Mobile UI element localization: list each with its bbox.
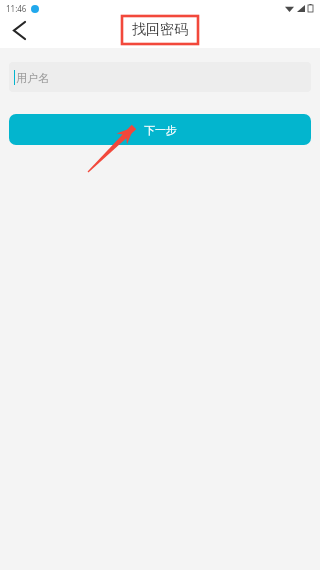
staticText: 下一步	[144, 123, 177, 137]
button[interactable]: Back	[0, 11, 38, 49]
button[interactable]: 下一步	[9, 114, 311, 145]
staticText: 11:46	[6, 3, 27, 14]
staticText: 用户名	[16, 71, 49, 85]
staticText: 找回密码	[132, 21, 188, 39]
button[interactable]: 用户名	[9, 62, 311, 92]
